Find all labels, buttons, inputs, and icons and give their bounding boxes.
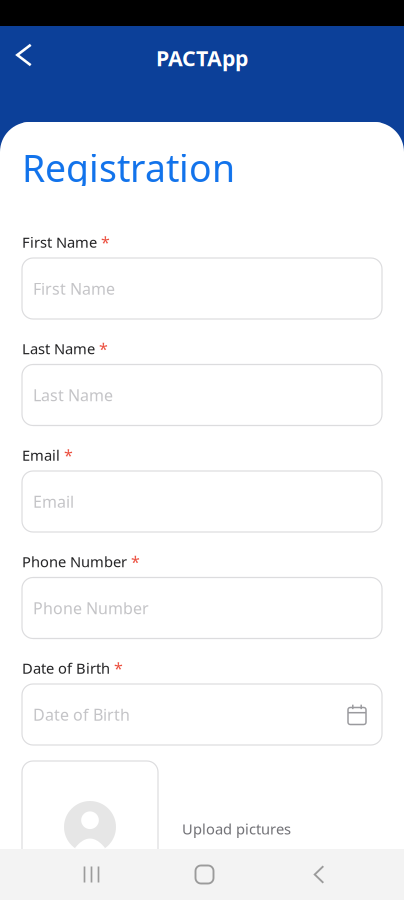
button[interactable]: Back — [261, 849, 377, 900]
button[interactable]: First Name — [22, 258, 382, 319]
staticText: * — [99, 338, 108, 359]
staticText: Date of Birth — [33, 704, 130, 725]
staticText: PACTApp — [156, 44, 248, 72]
button[interactable]: Upload pictures — [158, 761, 291, 852]
button[interactable]: Email — [22, 471, 382, 532]
staticText: * — [131, 551, 140, 572]
staticText: Date of Birth — [22, 658, 110, 678]
button[interactable]: Home — [148, 849, 261, 900]
button[interactable]: Phone Number — [22, 577, 382, 638]
staticText: * — [64, 444, 73, 466]
staticText: Last Name — [22, 339, 95, 358]
button[interactable]: Back — [0, 36, 50, 79]
staticText: Phone Number — [22, 552, 127, 571]
button[interactable]: Date of Birth — [22, 684, 382, 745]
button[interactable]: Last Name — [22, 364, 382, 425]
staticText: Registration — [22, 143, 235, 192]
staticText: Phone Number — [33, 597, 149, 619]
staticText: Email — [33, 491, 74, 512]
staticText: Email — [22, 445, 60, 465]
button[interactable]: Recent apps — [35, 849, 148, 900]
button[interactable]: Add picture — [22, 761, 158, 873]
staticText: * — [101, 231, 110, 253]
staticText: * — [114, 657, 123, 679]
staticText: First Name — [22, 232, 97, 252]
staticText: Upload pictures — [182, 819, 291, 838]
staticText: First Name — [33, 278, 115, 299]
staticText: Last Name — [33, 384, 113, 406]
